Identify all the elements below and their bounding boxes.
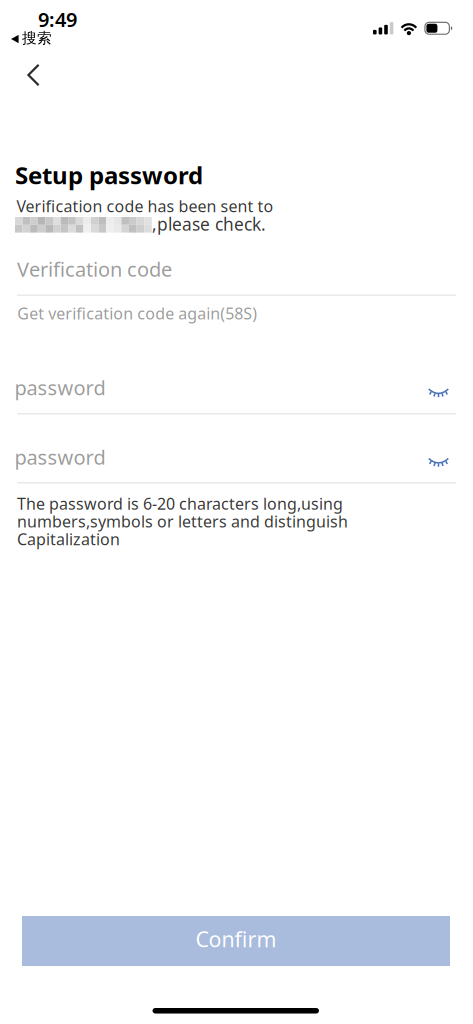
staticText: password [14, 444, 105, 470]
staticText: Get verification code again(58S) [17, 303, 257, 324]
staticText: Verification code has been sent to [16, 195, 273, 216]
button[interactable]: Show password [428, 388, 449, 398]
staticText: numbers,symbols or letters and distingui… [17, 511, 348, 532]
button[interactable]: Show password [428, 457, 449, 467]
staticText: 9:49 [38, 6, 77, 32]
staticText: The password is 6-20 characters long,usi… [17, 493, 343, 514]
staticText: Verification code [17, 256, 172, 282]
button[interactable]: Confirm [22, 916, 450, 966]
staticText: 搜索 [22, 29, 52, 47]
button[interactable]: Get verification code again(58S) [17, 303, 257, 324]
staticText: Capitalization [17, 528, 120, 549]
staticText: password [14, 374, 105, 401]
button[interactable]: 返回搜索 [11, 29, 52, 47]
staticText: ,please check. [152, 212, 266, 235]
staticText: Setup password [15, 159, 203, 191]
staticText: Confirm [195, 925, 276, 953]
button[interactable]: Back [16, 57, 53, 93]
